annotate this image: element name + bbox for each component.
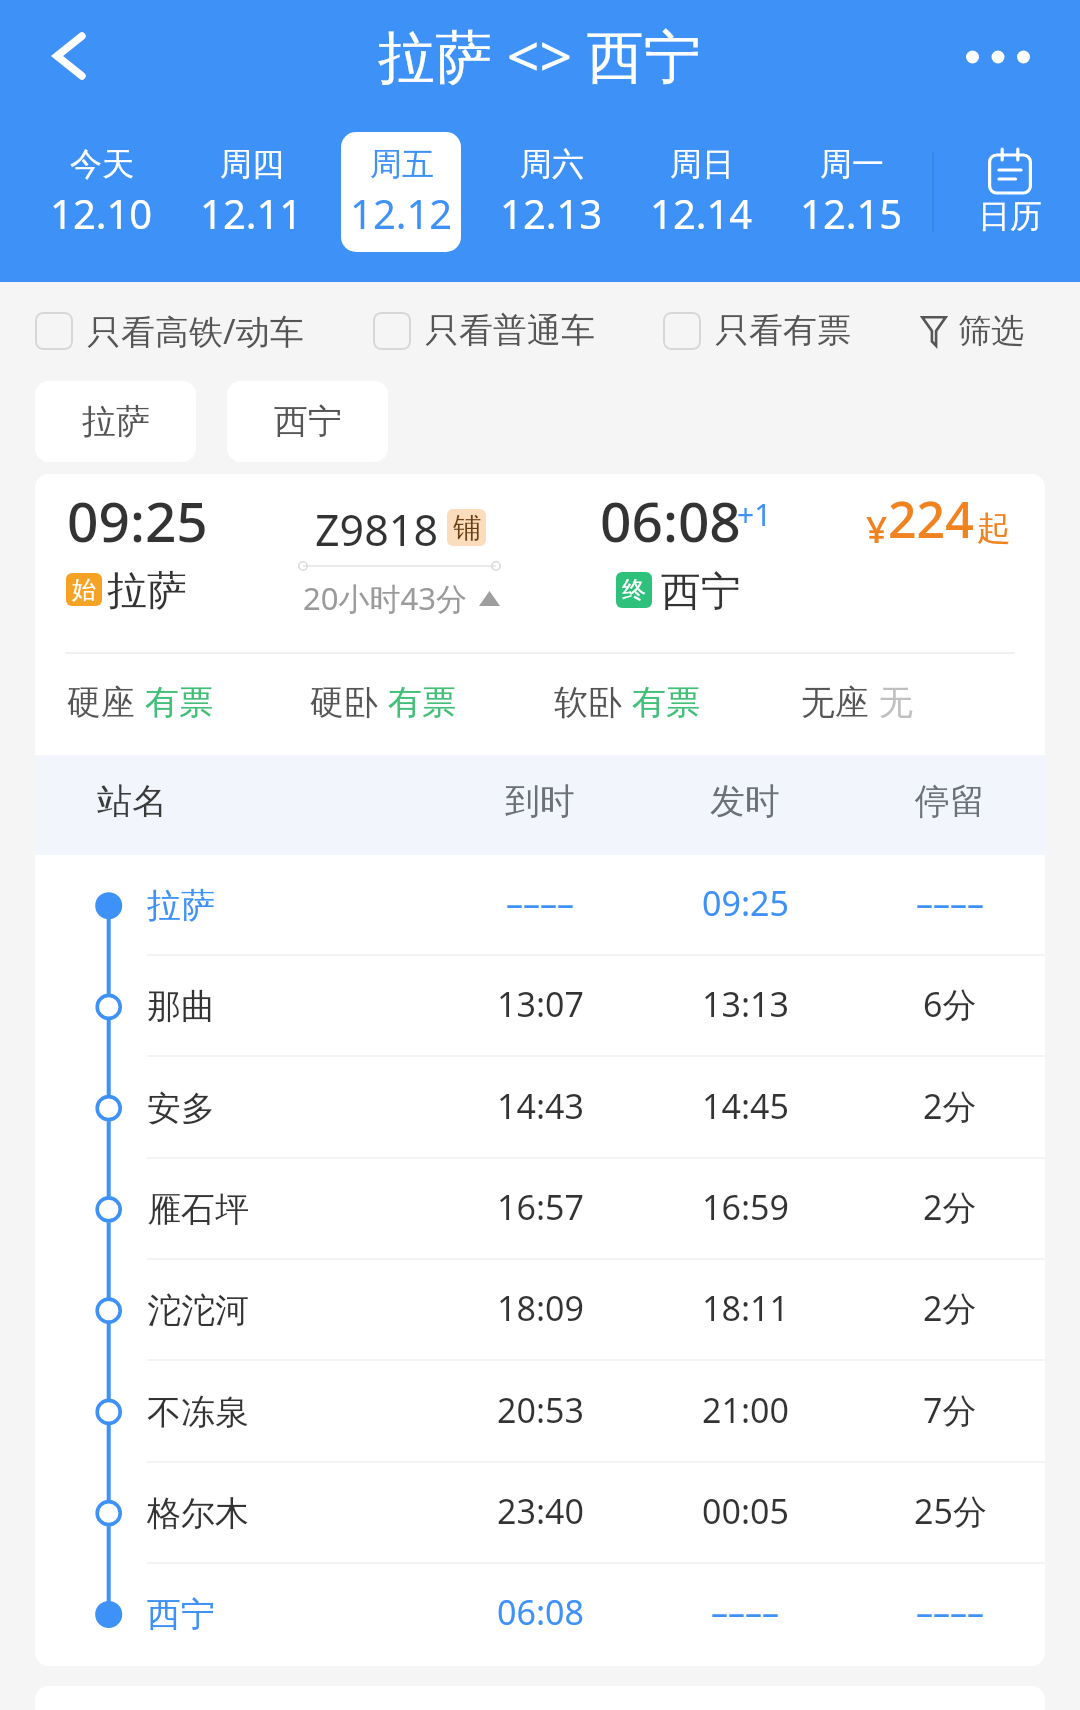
staticText: Z9818 [315, 500, 438, 559]
staticText: 铺 [453, 510, 481, 545]
staticText: 09:25 [67, 483, 208, 558]
staticText: 停留 [915, 779, 985, 823]
staticText: 2分 [923, 1285, 977, 1331]
staticText: 安多 [147, 1087, 215, 1130]
staticText: 软卧 [554, 681, 622, 724]
staticText: 只看高铁/动车 [87, 308, 304, 354]
button[interactable]: 不冻泉 [35, 1362, 1045, 1463]
staticText: 12.10 [50, 186, 153, 240]
button[interactable]: 周四 [191, 132, 311, 252]
button[interactable]: 今天 [41, 132, 161, 252]
staticText: 12.14 [650, 186, 753, 240]
staticText: 硬座 [67, 681, 135, 724]
button[interactable]: 那曲 [35, 956, 1045, 1057]
staticText: 224 [888, 485, 974, 553]
staticText: 12.12 [350, 186, 453, 240]
staticText: 周四 [220, 144, 284, 184]
staticText: 13:13 [702, 981, 789, 1027]
button[interactable]: 筛选 [921, 310, 1024, 352]
staticText: 12.13 [500, 186, 603, 240]
button[interactable]: 拉萨 [35, 855, 1045, 956]
button[interactable]: 沱沱河 [35, 1260, 1045, 1361]
staticText: 拉萨 [147, 884, 215, 927]
button[interactable]: 硬座 [67, 681, 213, 724]
button[interactable]: 西宁 [35, 1564, 1045, 1665]
button[interactable]: Back [24, 11, 114, 101]
staticText: 那曲 [147, 985, 215, 1028]
staticText: –––– [916, 880, 984, 926]
staticText: 23:40 [497, 1488, 584, 1534]
staticText: 14:43 [497, 1083, 584, 1129]
staticText: 18:09 [497, 1285, 584, 1331]
staticText: 20小时43分 [303, 577, 467, 619]
staticText: 12.15 [800, 186, 903, 240]
staticText: 无座 [801, 681, 869, 724]
staticText: 沱沱河 [147, 1289, 249, 1332]
staticText: 周五 [370, 144, 434, 184]
staticText: 拉萨 <> 西宁 [378, 16, 701, 94]
staticText: –––– [711, 1589, 779, 1635]
staticText: 始 [72, 575, 96, 605]
staticText: 无 [879, 681, 913, 724]
staticText: 18:11 [702, 1285, 789, 1331]
staticText: 14:45 [702, 1083, 789, 1129]
button[interactable]: 格尔木 [35, 1463, 1045, 1564]
staticText: 今天 [70, 144, 134, 184]
staticText: 16:59 [702, 1184, 789, 1230]
staticText: –––– [506, 880, 574, 926]
staticText: 13:07 [497, 981, 584, 1027]
staticText: 不冻泉 [147, 1391, 249, 1434]
staticText: +1 [737, 494, 772, 535]
button[interactable]: 只看普通车 [373, 309, 595, 352]
button[interactable]: 软卧 [554, 681, 700, 724]
button[interactable]: 周五 [341, 132, 461, 252]
staticText: 西宁 [147, 1593, 215, 1636]
staticText: 周日 [670, 144, 734, 184]
button[interactable]: 安多 [35, 1058, 1045, 1159]
staticText: 06:08 [600, 483, 741, 558]
staticText: 06:08 [497, 1589, 584, 1635]
staticText: 有票 [388, 681, 456, 724]
staticText: 站名 [97, 779, 167, 823]
button[interactable]: 硬卧 [310, 681, 456, 724]
staticText: 周六 [520, 144, 584, 184]
staticText: –––– [916, 1589, 984, 1635]
staticText: 拉萨 [82, 400, 150, 443]
button[interactable]: 周日 [641, 132, 761, 252]
staticText: 发时 [710, 779, 780, 823]
staticText: 日历 [978, 196, 1042, 236]
staticText: 21:00 [702, 1387, 789, 1433]
staticText: 周一 [820, 144, 884, 184]
staticText: 只看有票 [715, 309, 851, 352]
staticText: 25分 [914, 1488, 987, 1534]
staticText: 16:57 [497, 1184, 584, 1230]
staticText: 硬卧 [310, 681, 378, 724]
staticText: 有票 [145, 681, 213, 724]
staticText: 12.11 [200, 186, 303, 240]
button[interactable]: 周六 [491, 132, 611, 252]
staticText: 只看普通车 [425, 309, 595, 352]
staticText: 格尔木 [147, 1492, 249, 1535]
staticText: ¥ [866, 503, 888, 553]
staticText: 拉萨 [107, 565, 187, 615]
button[interactable]: 拉萨 [35, 381, 196, 462]
staticText: 起 [977, 507, 1011, 550]
staticText: 筛选 [958, 310, 1024, 352]
button[interactable]: 西宁 [227, 381, 388, 462]
button[interactable]: 无座 [801, 681, 913, 724]
button[interactable]: 只看有票 [663, 309, 851, 352]
staticText: 20:53 [497, 1387, 584, 1433]
button[interactable]: 只看高铁/动车 [35, 308, 304, 354]
staticText: 00:05 [702, 1488, 789, 1534]
staticText: 终 [622, 575, 646, 605]
staticText: 2分 [923, 1083, 977, 1129]
button[interactable]: 周一 [791, 132, 911, 252]
staticText: 西宁 [274, 400, 342, 443]
button[interactable]: Calendar [940, 140, 1080, 240]
staticText: 到时 [505, 779, 575, 823]
button[interactable]: More options [953, 12, 1043, 102]
button[interactable] [35, 474, 1045, 755]
staticText: 有票 [632, 681, 700, 724]
staticText: 7分 [923, 1387, 977, 1433]
button[interactable]: 雁石坪 [35, 1159, 1045, 1260]
